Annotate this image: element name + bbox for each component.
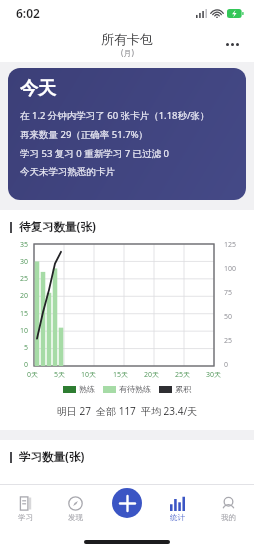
staticText: 我的 xyxy=(221,513,236,522)
button[interactable]: 我的 xyxy=(203,484,254,534)
staticText: 0 xyxy=(24,360,29,370)
staticText: 10 xyxy=(20,326,29,336)
staticText: 125 xyxy=(224,240,237,250)
staticText: 待复习数量(张) xyxy=(19,219,96,235)
staticText: 有待熟练 xyxy=(119,384,151,394)
staticText: 100 xyxy=(224,264,237,274)
button[interactable]: 发现 xyxy=(50,484,101,534)
staticText: 0天 xyxy=(27,370,39,380)
staticText: 25 xyxy=(20,274,29,284)
button[interactable]: 今天 xyxy=(8,68,246,200)
staticText: 统计 xyxy=(170,513,185,522)
staticText: 15 xyxy=(20,309,29,319)
staticText: 50 xyxy=(224,312,233,322)
staticText: 10天 xyxy=(81,370,97,380)
staticText: 发现 xyxy=(68,513,83,522)
staticText: 20天 xyxy=(144,370,160,380)
staticText: 今天未学习熟悉的卡片 xyxy=(20,166,115,178)
staticText: 熟练 xyxy=(79,384,95,394)
button[interactable]: Add xyxy=(112,488,142,518)
staticText: 15天 xyxy=(113,370,129,380)
staticText: 明日 27 全部 117 平均 23.4/天 xyxy=(0,404,254,418)
staticText: 1250 xyxy=(225,484,242,494)
staticText: 学习 xyxy=(18,513,33,522)
staticText: (月) xyxy=(121,47,134,58)
staticText: 6:02 xyxy=(16,5,40,21)
staticText: 在 1.2 分钟内学习了 60 张卡片（1.18秒/张） xyxy=(20,109,210,122)
button[interactable]: 学习 xyxy=(0,484,50,534)
staticText: 25天 xyxy=(175,370,191,380)
staticText: 75 xyxy=(224,288,233,298)
staticText: 再来数量 29（正确率 51.7%） xyxy=(20,128,149,141)
staticText: 35 xyxy=(20,240,29,250)
staticText: 今天 xyxy=(20,77,56,100)
staticText: 5 xyxy=(24,343,29,353)
staticText: 25 xyxy=(224,336,233,346)
staticText: 学习 53 复习 0 重新学习 7 已过滤 0 xyxy=(20,147,169,160)
staticText: 学习数量(张) xyxy=(19,449,85,465)
button[interactable]: More options xyxy=(216,28,248,60)
staticText: 5天 xyxy=(54,370,66,380)
staticText: 20 xyxy=(20,291,29,301)
staticText: 所有卡包 xyxy=(101,31,153,47)
staticText: 0 xyxy=(224,360,229,370)
button[interactable]: 统计 xyxy=(152,484,203,534)
staticText: 累积 xyxy=(175,384,191,394)
staticText: 30天 xyxy=(206,370,222,380)
staticText: 1000 xyxy=(10,484,27,494)
staticText: 30 xyxy=(20,257,29,267)
